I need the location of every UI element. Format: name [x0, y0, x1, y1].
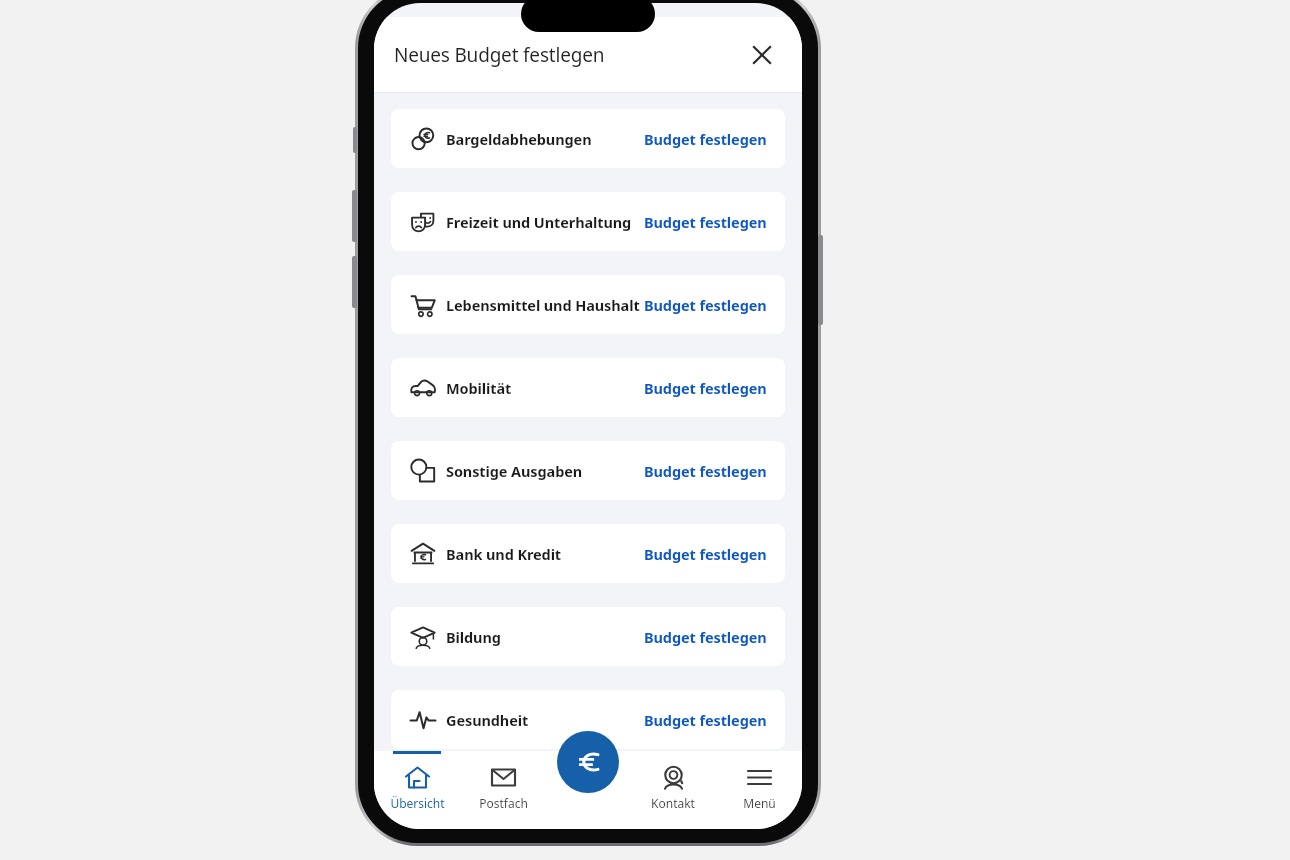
button[interactable]: Kontakt [630, 751, 716, 829]
staticText: Übersicht [390, 795, 445, 811]
staticText: Budget festlegen [644, 378, 767, 398]
staticText: Lebensmittel und Haushalt [446, 295, 640, 315]
button[interactable]: Postfach [460, 751, 546, 829]
button[interactable]: Freizeit und Unterhaltung [391, 192, 785, 251]
staticText: Budget festlegen [644, 295, 767, 315]
staticText: Gesundheit [446, 710, 529, 730]
staticText: Budget festlegen [644, 544, 767, 564]
staticText: Budget festlegen [644, 129, 767, 149]
staticText: Bank und Kredit [446, 544, 562, 564]
staticText: Budget festlegen [644, 212, 767, 232]
staticText: Postfach [479, 795, 528, 811]
button[interactable]: Bank und Kredit [391, 524, 785, 583]
staticText: Menü [743, 795, 776, 811]
staticText: Bildung [446, 627, 501, 647]
staticText: Mobilität [446, 378, 512, 398]
button[interactable]: Menü [716, 751, 802, 829]
staticText: Neues Budget festlegen [394, 42, 605, 68]
button[interactable]: Mobilität [391, 358, 785, 417]
staticText: Bargeldabhebungen [446, 129, 592, 149]
staticText: Budget festlegen [644, 461, 767, 481]
staticText: Budget festlegen [644, 627, 767, 647]
staticText: Freizeit und Unterhaltung [446, 212, 632, 232]
staticText: Kontakt [651, 795, 695, 811]
button[interactable]: Übersicht [374, 751, 460, 829]
staticText: Sonstige Ausgaben [446, 461, 583, 481]
button[interactable]: Sonstige Ausgaben [391, 441, 785, 500]
button[interactable]: Bargeldabhebungen [391, 109, 785, 168]
staticText: Budget festlegen [644, 710, 767, 730]
button[interactable]: Lebensmittel und Haushalt [391, 275, 785, 334]
button[interactable]: Bildung [391, 607, 785, 666]
button[interactable]: Überweisung [557, 731, 619, 793]
button[interactable]: Schließen [742, 35, 782, 75]
button[interactable]: Gesundheit [391, 690, 785, 749]
